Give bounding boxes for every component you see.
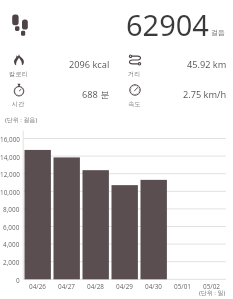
staticText: (단위 : 걸음) [5, 116, 38, 124]
staticText: 10,000 [0, 188, 20, 197]
staticText: 45.92 km [187, 58, 227, 71]
button[interactable]: 속도 [116, 76, 233, 106]
staticText: 속도 [128, 100, 141, 108]
button[interactable]: 거리 [116, 46, 233, 76]
button[interactable]: 62904 [126, 5, 209, 44]
staticText: 04/29 [116, 282, 133, 291]
staticText: 04/27 [58, 282, 75, 291]
staticText: 04/30 [145, 282, 162, 291]
staticText: 04/28 [87, 282, 104, 291]
staticText: (단위 : 일) [199, 289, 226, 297]
staticText: 14,000 [0, 153, 20, 162]
staticText: 4,000 [3, 240, 20, 249]
staticText: 16,000 [0, 135, 20, 144]
staticText: 걸음 [211, 28, 225, 37]
staticText: 04/26 [29, 282, 46, 291]
staticText: 12,000 [0, 170, 20, 179]
staticText: 05/01 [174, 282, 191, 291]
staticText: 8,000 [3, 205, 20, 214]
staticText: 시간 [12, 100, 25, 108]
staticText: 6,000 [3, 223, 20, 232]
button[interactable]: 칼로리 [0, 46, 116, 76]
button[interactable]: 시간 [0, 76, 116, 106]
staticText: 688 분 [82, 88, 110, 101]
staticText: 2.75 km/h [183, 88, 227, 101]
staticText: 거리 [128, 70, 141, 78]
staticText: 05/02 [203, 282, 220, 291]
staticText: 2,000 [3, 258, 20, 267]
staticText: 2096 kcal [69, 58, 110, 71]
staticText: 62904 [126, 5, 209, 44]
button[interactable]: Steps [12, 14, 28, 37]
staticText: 0 [16, 276, 20, 285]
staticText: 칼로리 [9, 70, 28, 78]
